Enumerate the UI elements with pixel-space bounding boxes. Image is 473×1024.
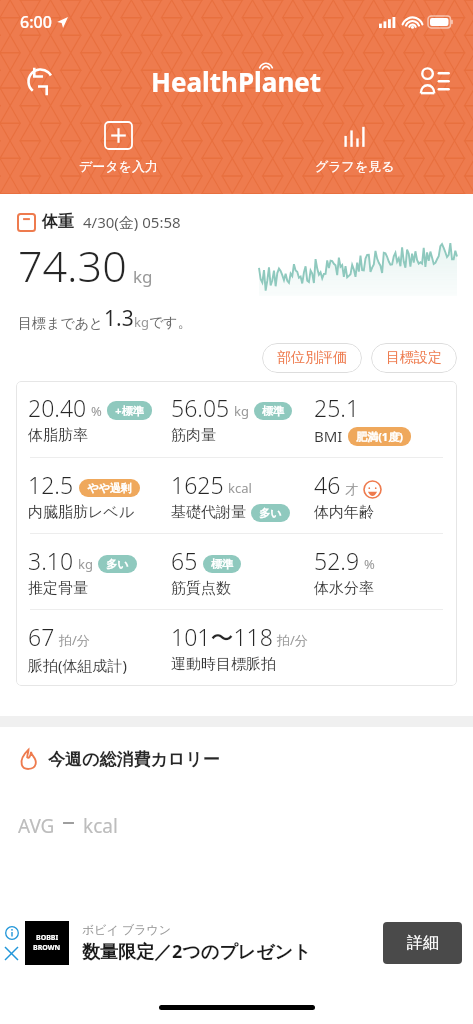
staticText: kcal [83,813,118,839]
staticText: 1.3 [104,304,134,333]
staticText: 筋質点数 [171,579,231,598]
staticText: ボビイ ブラウン [82,921,172,937]
button[interactable]: Profile [411,59,455,103]
button[interactable]: 67 [28,621,128,675]
staticText: 推定骨量 [28,579,88,598]
button[interactable]: 3.10 [28,545,137,598]
button[interactable]: Ad info [3,924,20,941]
staticText: – [62,802,76,837]
staticText: HealthPlanet [151,64,322,99]
staticText: 体水分率 [314,579,374,598]
button[interactable]: Refresh [18,59,62,103]
staticText: 標準 [211,557,233,571]
button[interactable]: 101〜118 [171,621,308,674]
staticText: 体脂肪率 [28,426,88,445]
staticText: 74.30 [18,236,127,295]
staticText: % [364,555,375,573]
staticText: 101〜118 [171,621,273,652]
staticText: 目標設定 [386,349,442,367]
button[interactable]: 詳細 [383,922,462,964]
staticText: 6:00 [20,11,52,33]
staticText: kg [133,265,153,288]
button[interactable]: 46 [314,469,382,522]
staticText: 多い [106,557,129,571]
staticText: % [91,402,102,420]
staticText: 基礎代謝量 [171,503,246,522]
staticText: 部位別評価 [277,349,347,367]
staticText: 56.05 [171,392,230,423]
staticText: 詳細 [407,933,439,953]
staticText: 65 [171,545,198,576]
staticText: 46 [314,469,341,500]
staticText: BOBBI [36,933,59,943]
staticText: +標準 [115,403,144,418]
staticText: 4/30(金) 05:58 [83,212,181,232]
staticText: データを入力 [79,158,158,174]
staticText: 肥満(1度) [356,429,403,444]
button[interactable]: 52.9 [314,545,375,598]
staticText: 多い [259,506,282,520]
staticText: 目標まであと [18,315,104,333]
staticText: 1625 [171,469,224,500]
button[interactable]: Close ad [3,945,20,962]
staticText: AVG [18,813,55,839]
staticText: BROWN [33,943,61,953]
staticText: 標準 [262,404,284,418]
staticText: 拍/分 [277,631,308,649]
button[interactable]: 1625 [171,469,290,522]
staticText: 運動時目標脈拍 [171,655,276,674]
staticText: 筋肉量 [171,426,216,445]
staticText: 52.9 [314,545,360,576]
staticText: kg [78,555,93,573]
staticText: 12.5 [28,469,74,500]
staticText: 67 [28,621,55,652]
staticText: 25.1 [314,392,360,423]
button[interactable]: 目標設定 [371,343,457,373]
button[interactable]: データを入力 [0,118,236,178]
staticText: kg [234,402,249,420]
button[interactable]: 12.5 [28,469,140,522]
staticText: 今週の総消費カロリー [48,749,220,770]
staticText: kcal [228,479,252,497]
staticText: です。 [149,314,192,332]
staticText: 拍/分 [59,631,90,649]
button[interactable]: 25.1 [314,392,411,446]
staticText: 3.10 [28,545,74,576]
staticText: 体重 [42,212,74,232]
button[interactable]: 56.05 [171,392,292,445]
staticText: 数量限定／2つのプレゼント [82,939,312,964]
staticText: 才 [345,481,358,497]
staticText: 20.40 [28,392,87,423]
staticText: やや過剰 [87,481,132,495]
staticText: 内臓脂肪レベル [28,503,135,522]
staticText: グラフを見る [315,158,395,174]
button[interactable]: 部位別評価 [262,343,362,373]
button[interactable]: グラフを見る [236,118,473,178]
staticText: 脈拍(体組成計) [28,655,128,675]
button[interactable]: 20.40 [28,392,152,445]
button[interactable]: 65 [171,545,241,598]
staticText: BMI [314,426,343,446]
staticText: kg [134,313,149,331]
staticText: 体内年齢 [314,503,374,522]
